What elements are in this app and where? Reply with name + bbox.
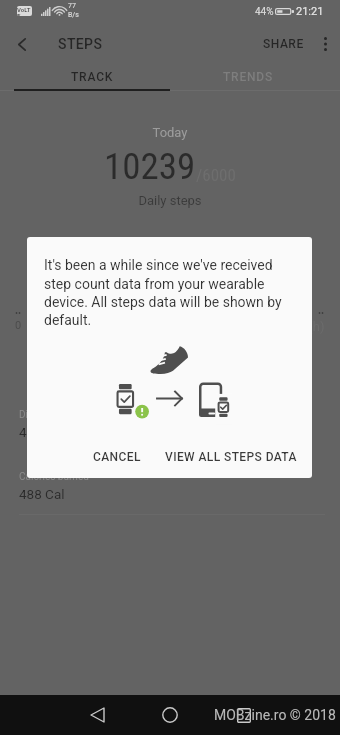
staticText: VIEW ALL STEPS DATA bbox=[165, 450, 297, 464]
staticText: Calories burned bbox=[19, 471, 89, 483]
staticText: B/s bbox=[68, 11, 79, 19]
staticText: d(h) bbox=[301, 319, 325, 334]
staticText: 44% bbox=[255, 6, 274, 18]
staticText: Distance bbox=[19, 409, 58, 421]
button[interactable]: Navigate up bbox=[8, 30, 36, 58]
staticText: 0 bbox=[15, 319, 22, 332]
staticText: Daily steps bbox=[0, 193, 340, 208]
staticText: 77 bbox=[68, 2, 76, 10]
staticText: It's been a while since we've received s… bbox=[44, 257, 284, 328]
button[interactable]: CANCEL bbox=[85, 443, 149, 471]
button[interactable]: TRENDS bbox=[170, 62, 326, 91]
staticText: •• bbox=[15, 308, 22, 319]
staticText: 10239 bbox=[104, 145, 196, 188]
staticText: TRENDS bbox=[223, 70, 274, 84]
staticText: CANCEL bbox=[93, 450, 141, 464]
staticText: STEPS bbox=[58, 36, 103, 52]
staticText: 488 Cal bbox=[19, 486, 65, 502]
staticText: •• bbox=[318, 308, 325, 319]
staticText: VoLTE bbox=[17, 6, 32, 16]
staticText: Today bbox=[0, 125, 340, 140]
button[interactable]: TRACK bbox=[14, 62, 170, 91]
staticText: SHARE bbox=[263, 37, 304, 51]
staticText: 21:21 bbox=[296, 5, 324, 18]
button[interactable]: Back bbox=[82, 700, 112, 730]
button[interactable]: Home bbox=[155, 700, 185, 730]
button[interactable]: Recents bbox=[229, 700, 259, 730]
button[interactable]: SHARE bbox=[257, 29, 310, 59]
staticText: MOBzine.ro © 2018 bbox=[214, 707, 336, 723]
staticText: 4.9 km bbox=[19, 424, 60, 440]
button[interactable]: More options bbox=[310, 29, 340, 59]
staticText: TRACK bbox=[71, 70, 114, 84]
staticText: /6000 bbox=[196, 165, 236, 185]
button[interactable]: VIEW ALL STEPS DATA bbox=[157, 443, 305, 471]
